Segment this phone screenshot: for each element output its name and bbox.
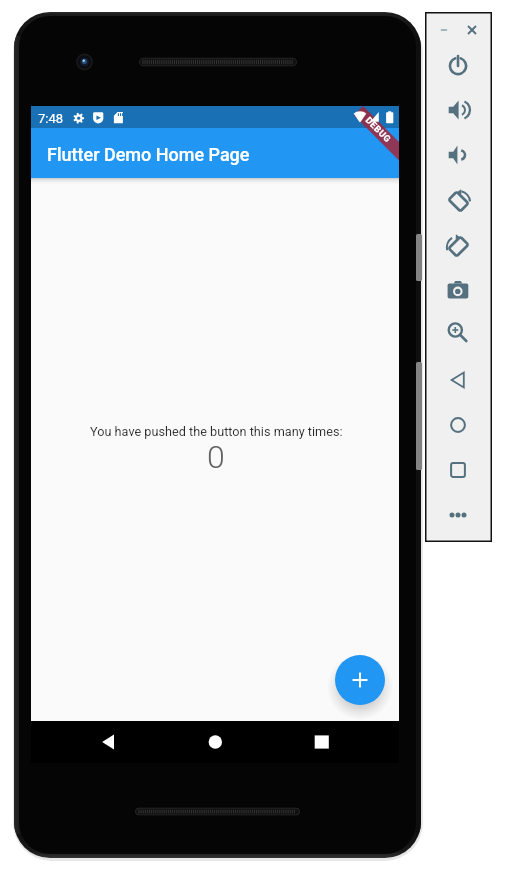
button[interactable]: Increment xyxy=(335,655,385,705)
button[interactable]: Close xyxy=(461,19,483,41)
staticText: Flutter Demo Home Page xyxy=(47,144,250,165)
button[interactable]: Home xyxy=(444,411,472,439)
button[interactable]: Volume down xyxy=(444,141,472,169)
staticText: You have pushed the button this many tim… xyxy=(90,424,343,439)
button[interactable]: Take screenshot xyxy=(444,276,472,304)
button[interactable]: Back xyxy=(95,729,119,753)
button[interactable]: Minimize xyxy=(434,19,456,41)
staticText: DEBUG xyxy=(363,115,393,146)
button[interactable]: More xyxy=(444,501,472,529)
button[interactable]: Back xyxy=(444,366,472,394)
button[interactable]: Rotate left xyxy=(444,186,472,214)
staticText: 0 xyxy=(207,438,225,476)
staticText: 7:48 xyxy=(38,111,64,126)
button[interactable]: Power xyxy=(444,52,472,80)
button[interactable]: Rotate right xyxy=(444,231,472,259)
button[interactable]: Home xyxy=(203,729,227,753)
button[interactable]: Zoom in xyxy=(444,318,472,346)
button[interactable]: Recents xyxy=(309,729,333,753)
button[interactable]: Volume up xyxy=(444,96,472,124)
button[interactable]: Overview xyxy=(444,456,472,484)
